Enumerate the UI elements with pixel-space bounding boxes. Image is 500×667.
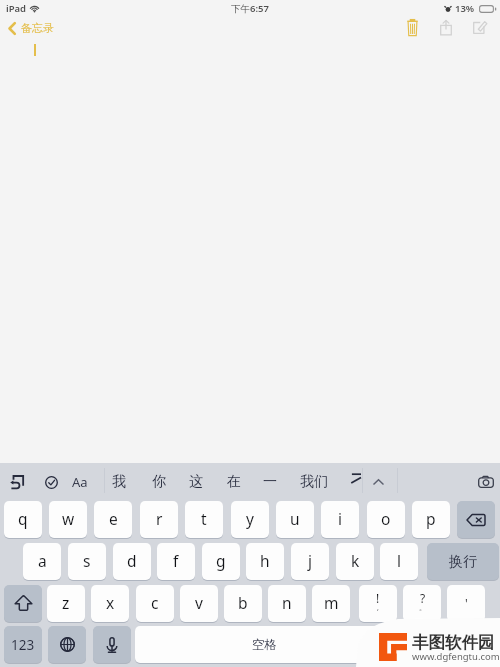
button[interactable]: 我们 [298,463,330,501]
staticText: 在 [227,473,241,491]
button[interactable]: p [412,501,450,538]
staticText: n [282,592,292,613]
button[interactable]: i [321,501,359,538]
button[interactable]: 在 [222,463,246,501]
button[interactable]: b [224,585,262,622]
button[interactable]: Dictation [93,626,131,663]
button[interactable]: r [140,501,178,538]
button[interactable]: j [291,543,329,580]
button[interactable]: New note [463,12,497,42]
button[interactable]: w [49,501,87,538]
staticText: 空格 [252,637,277,653]
staticText: b [238,592,248,613]
button[interactable]: u [276,501,314,538]
staticText: m [324,592,339,613]
staticText: 备忘录 [21,21,54,35]
button[interactable]: v [180,585,218,622]
button[interactable]: d [113,543,151,580]
button[interactable]: ? [403,585,441,622]
staticText: e [109,508,118,529]
button[interactable]: e [94,501,132,538]
button[interactable]: 备忘录 [6,19,56,37]
button[interactable]: Delete note [395,12,429,42]
button[interactable]: k [336,543,374,580]
staticText: f [173,550,179,571]
staticText: a [38,550,47,571]
button[interactable]: Text format [66,463,94,501]
button[interactable]: Camera [473,469,499,495]
button[interactable]: Backspace [457,501,495,538]
button[interactable]: n [268,585,306,622]
button[interactable]: Share [429,12,463,42]
staticText: www.dgfengtu.com [412,650,500,663]
staticText: 我 [112,473,126,491]
staticText: s [83,550,91,571]
staticText: 13% [455,2,475,15]
staticText: h [260,550,270,571]
button[interactable]: 你 [147,463,171,501]
staticText: 你 [152,473,166,491]
staticText: 一 [263,473,277,491]
staticText: 123 [11,636,35,654]
button[interactable]: g [202,543,240,580]
staticText: l [397,550,401,571]
button[interactable]: ! [359,585,397,622]
staticText: d [127,550,137,571]
staticText: t [201,508,207,529]
staticText: 丰图软件园 [412,632,495,653]
staticText: y [246,508,254,529]
button[interactable]: l [380,543,418,580]
button[interactable]: Collapse candidates [364,463,392,501]
button[interactable]: 这 [184,463,208,501]
staticText: ? [420,590,426,606]
staticText: 我们 [300,473,328,491]
staticText: r [156,508,163,529]
staticText: , [377,603,379,613]
button[interactable]: 123 [4,626,42,663]
button[interactable]: y [231,501,269,538]
button[interactable]: o [367,501,405,538]
staticText: w [62,508,75,529]
staticText: 。 [419,603,426,612]
staticText: v [195,592,203,613]
button[interactable]: s [68,543,106,580]
staticText: x [106,592,115,613]
staticText: o [381,508,391,529]
staticText: ' [465,595,468,611]
button[interactable]: a [23,543,61,580]
button[interactable]: Shift [4,585,42,622]
staticText: ! [376,590,380,606]
staticText: k [351,550,360,571]
button[interactable]: 我 [107,463,131,501]
staticText: z [62,592,70,613]
button[interactable]: f [157,543,195,580]
button[interactable]: Undo [3,463,31,501]
staticText: p [426,508,436,529]
button[interactable]: 空格 [135,626,496,663]
staticText: c [151,592,159,613]
staticText: j [308,550,312,571]
staticText: 下午6:57 [231,2,269,15]
button[interactable]: q [4,501,42,538]
button[interactable]: Checklist [37,463,65,501]
button[interactable]: More candidates [348,469,361,489]
staticText: iPad [6,2,27,15]
staticText: 换行 [449,553,477,571]
staticText: g [216,550,226,571]
button[interactable]: c [136,585,174,622]
staticText: 这 [189,473,203,491]
button[interactable]: t [185,501,223,538]
button[interactable]: h [246,543,284,580]
button[interactable]: 一 [258,463,282,501]
button[interactable]: Switch keyboard [48,626,86,663]
button[interactable]: ' [447,585,485,622]
button[interactable]: m [312,585,350,622]
staticText: i [338,508,342,529]
button[interactable]: z [47,585,85,622]
staticText: Aa [72,473,88,491]
button[interactable]: 换行 [427,543,499,580]
button[interactable]: x [91,585,129,622]
staticText: u [290,508,300,529]
staticText: q [18,508,28,529]
